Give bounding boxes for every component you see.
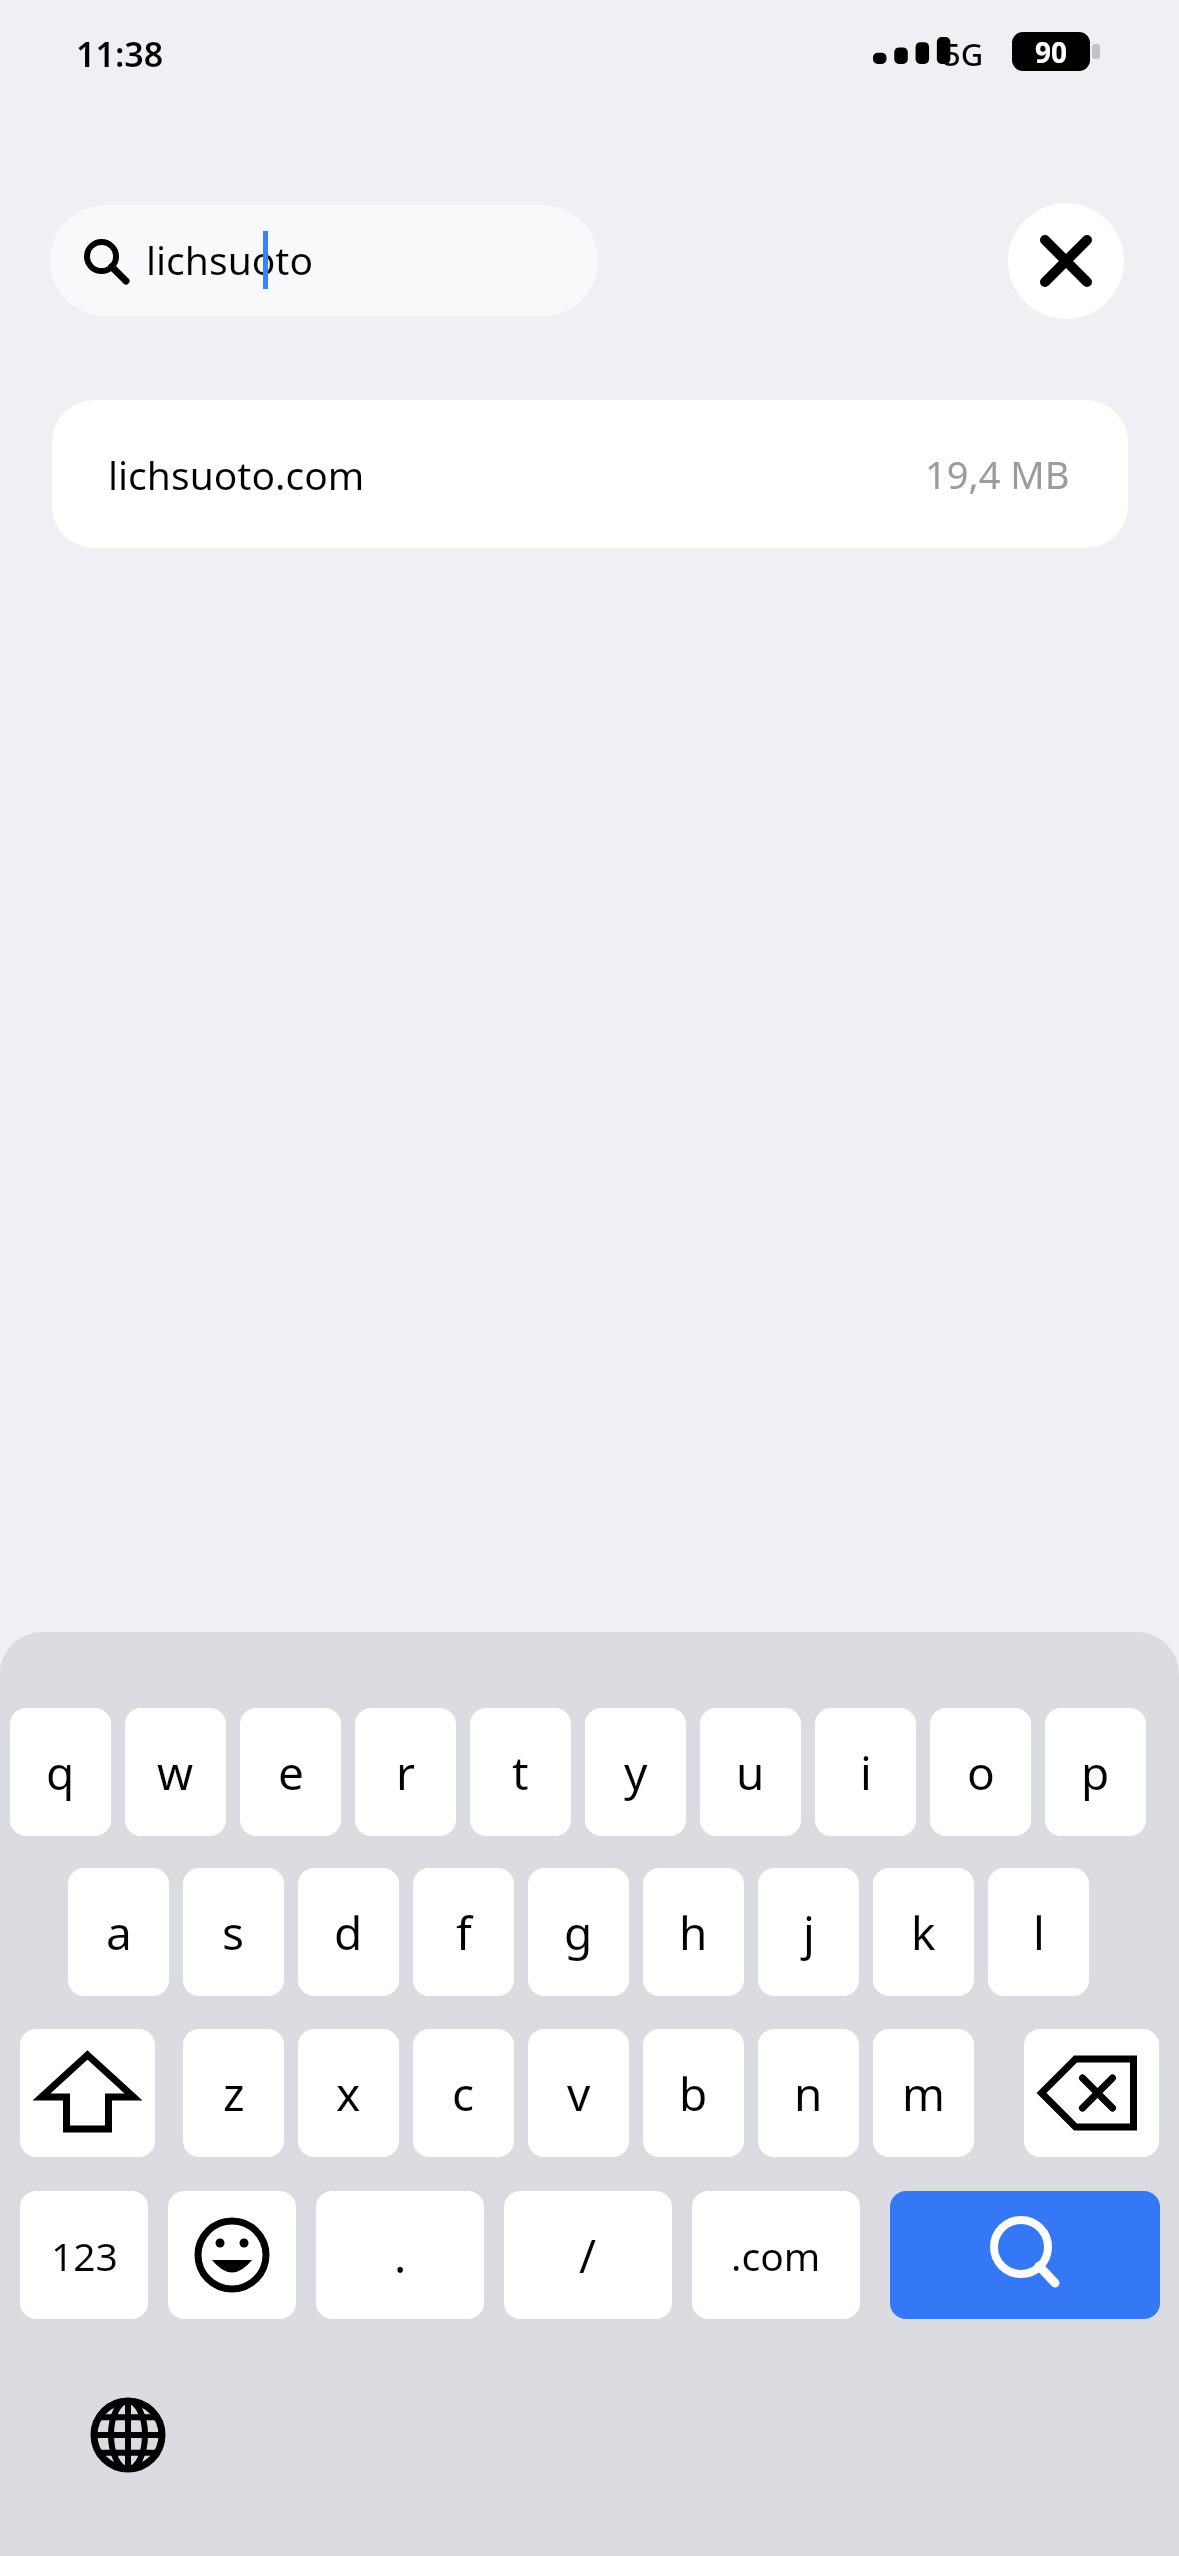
button[interactable]: e [240, 1708, 341, 1836]
staticText: 123 [51, 2229, 118, 2282]
staticText: u [736, 1741, 765, 1804]
staticText: o [967, 1741, 995, 1804]
staticText: k [911, 1901, 936, 1964]
button[interactable]: z [183, 2029, 284, 2157]
button[interactable]: q [10, 1708, 111, 1836]
button[interactable]: l [988, 1868, 1089, 1996]
staticText: 19,4 MB [925, 448, 1070, 500]
staticText: h [679, 1901, 708, 1964]
staticText: lichsuoto [146, 233, 313, 286]
staticText: n [794, 2062, 823, 2125]
staticText: / [579, 2224, 597, 2287]
button[interactable]: a [68, 1868, 169, 1996]
button[interactable]: lichsuoto.com [52, 400, 1128, 548]
button[interactable]: i [815, 1708, 916, 1836]
staticText: .com [731, 2229, 821, 2282]
staticText: 11:38 [76, 31, 164, 77]
button[interactable]: s [183, 1868, 284, 1996]
button[interactable]: k [873, 1868, 974, 1996]
button[interactable]: t [470, 1708, 571, 1836]
staticText: v [567, 2062, 591, 2125]
button[interactable]: n [758, 2029, 859, 2157]
button[interactable]: 123 [20, 2191, 148, 2319]
staticText: t [512, 1741, 529, 1804]
button[interactable]: u [700, 1708, 801, 1836]
button[interactable]: Backspace [1024, 2029, 1159, 2157]
button[interactable]: b [643, 2029, 744, 2157]
button[interactable]: lichsuoto [50, 205, 598, 316]
staticText: 5G [943, 33, 984, 75]
button[interactable]: r [355, 1708, 456, 1836]
button[interactable]: Switch keyboard language [90, 2397, 166, 2473]
button[interactable]: .com [692, 2191, 860, 2319]
staticText: w [157, 1741, 194, 1804]
staticText: r [396, 1741, 415, 1804]
button[interactable]: p [1045, 1708, 1146, 1836]
staticText: e [278, 1741, 304, 1804]
staticText: a [106, 1901, 132, 1964]
staticText: i [860, 1741, 872, 1804]
button[interactable]: j [758, 1868, 859, 1996]
staticText: f [456, 1901, 472, 1964]
button[interactable]: f [413, 1868, 514, 1996]
staticText: . [394, 2224, 407, 2287]
button[interactable]: Emoji [168, 2191, 296, 2319]
button[interactable]: y [585, 1708, 686, 1836]
staticText: j [803, 1901, 815, 1964]
button[interactable]: Close search [1008, 203, 1124, 319]
staticText: p [1081, 1741, 1110, 1804]
button[interactable]: h [643, 1868, 744, 1996]
button[interactable]: w [125, 1708, 226, 1836]
button[interactable]: . [316, 2191, 484, 2319]
button[interactable]: c [413, 2029, 514, 2157]
staticText: q [46, 1741, 75, 1804]
staticText: c [452, 2062, 475, 2125]
button[interactable]: Shift [20, 2029, 155, 2157]
staticText: s [222, 1901, 245, 1964]
staticText: lichsuoto.com [108, 448, 365, 501]
staticText: g [564, 1901, 593, 1964]
button[interactable]: v [528, 2029, 629, 2157]
staticText: m [902, 2062, 946, 2125]
button[interactable]: Search [890, 2191, 1160, 2319]
staticText: b [679, 2062, 708, 2125]
button[interactable]: o [930, 1708, 1031, 1836]
button[interactable]: x [298, 2029, 399, 2157]
staticText: 90 [1035, 33, 1068, 71]
staticText: x [336, 2062, 361, 2125]
button[interactable]: / [504, 2191, 672, 2319]
staticText: l [1033, 1901, 1045, 1964]
button[interactable]: m [873, 2029, 974, 2157]
staticText: z [223, 2062, 245, 2125]
button[interactable]: d [298, 1868, 399, 1996]
staticText: y [624, 1741, 648, 1804]
staticText: d [334, 1901, 363, 1964]
button[interactable]: g [528, 1868, 629, 1996]
